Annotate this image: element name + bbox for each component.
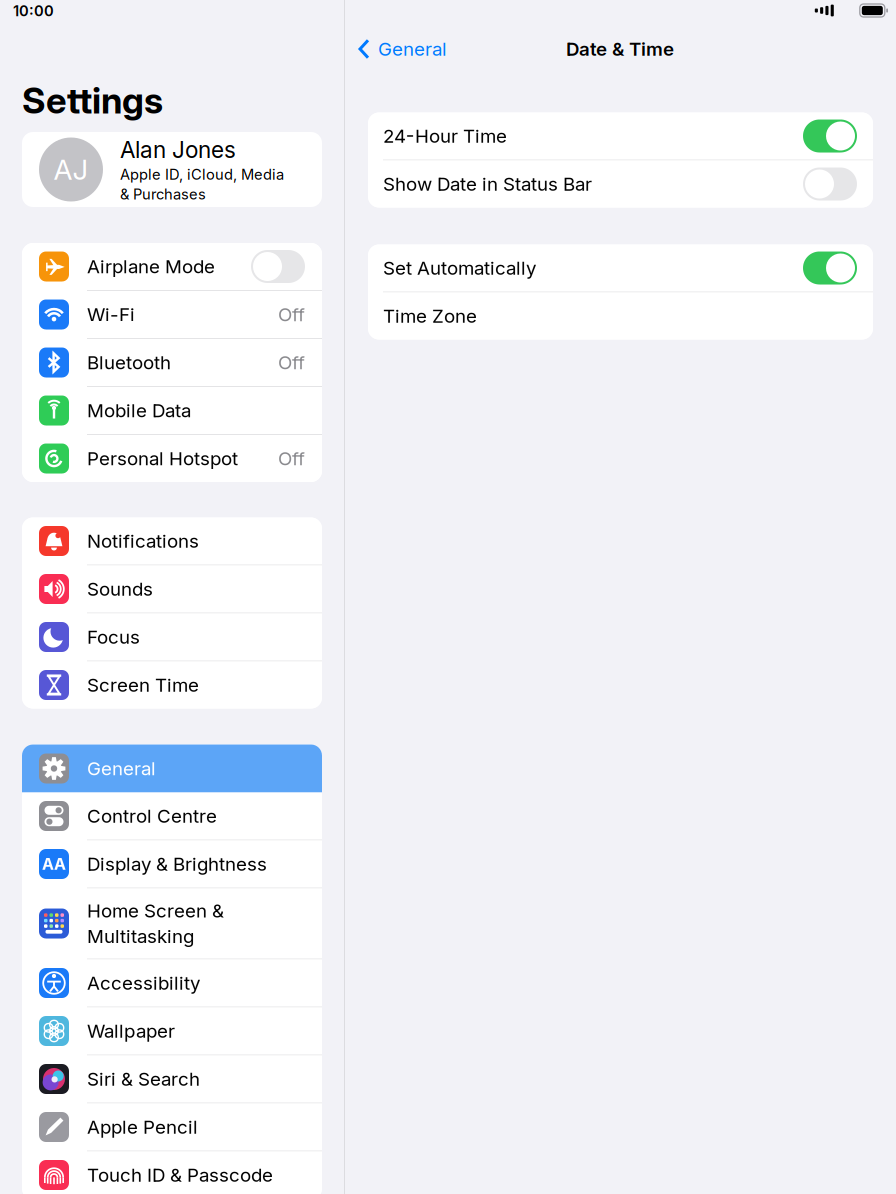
staticText: Alan Jones (120, 136, 236, 163)
button[interactable]: Set Automatically (368, 244, 873, 291)
button[interactable]: Sounds (22, 565, 322, 612)
staticText: Personal Hotspot (87, 447, 238, 470)
button[interactable]: Wallpaper (22, 1007, 322, 1054)
staticText: Wi-Fi (87, 303, 135, 326)
staticText: Wallpaper (87, 1020, 175, 1042)
staticText: Accessibility (87, 972, 200, 994)
button[interactable]: Focus (22, 613, 322, 660)
button[interactable]: General (358, 34, 447, 64)
staticText: 24-Hour Time (383, 125, 507, 147)
staticText: 10:00 (13, 2, 54, 20)
staticText: Apple ID, iCloud, Media (120, 165, 284, 183)
button[interactable]: Home Screen & (22, 888, 322, 958)
staticText: Show Date in Status Bar (383, 173, 592, 195)
staticText: Notifications (87, 530, 199, 552)
staticText: Off (278, 447, 305, 470)
button[interactable]: Touch ID & Passcode (22, 1151, 322, 1194)
button[interactable]: AA (22, 840, 322, 887)
button[interactable]: Personal Hotspot (22, 435, 322, 482)
staticText: Mobile Data (87, 399, 191, 422)
button[interactable]: Bluetooth (22, 339, 322, 386)
button[interactable]: Wi-Fi (22, 291, 322, 338)
staticText: Control Centre (87, 805, 217, 827)
staticText: Multitasking (87, 925, 194, 948)
staticText: Date & Time (566, 38, 674, 60)
button[interactable]: Show Date in Status Bar (368, 160, 873, 207)
button[interactable]: Notifications (22, 517, 322, 564)
staticText: AJ (53, 153, 88, 186)
staticText: Set Automatically (383, 257, 536, 279)
button[interactable]: Mobile Data (22, 387, 322, 434)
button[interactable]: Accessibility (22, 959, 322, 1006)
staticText: Home Screen & (87, 899, 224, 922)
staticText: Screen Time (87, 674, 199, 696)
staticText: Sounds (87, 578, 153, 600)
staticText: General (378, 38, 447, 60)
button[interactable]: Screen Time (22, 661, 322, 708)
button[interactable]: Control Centre (22, 792, 322, 839)
button[interactable]: Siri & Search (22, 1055, 322, 1102)
staticText: Settings (22, 79, 163, 122)
staticText: Off (278, 303, 305, 326)
staticText: AA (42, 854, 66, 874)
staticText: Bluetooth (87, 351, 171, 374)
button[interactable]: AJ (22, 132, 322, 207)
button[interactable]: 24-Hour Time (368, 112, 873, 159)
button[interactable]: Apple Pencil (22, 1103, 322, 1150)
staticText: Time Zone (383, 305, 477, 327)
staticText: Focus (87, 626, 140, 648)
staticText: Siri & Search (87, 1068, 200, 1090)
button[interactable]: Time Zone (368, 292, 873, 339)
staticText: Off (278, 351, 305, 374)
staticText: Display & Brightness (87, 853, 267, 875)
staticText: Apple Pencil (87, 1116, 198, 1138)
staticText: General (87, 757, 156, 780)
button[interactable]: Airplane Mode (22, 243, 322, 290)
staticText: Touch ID & Passcode (87, 1164, 273, 1186)
staticText: & Purchases (120, 185, 206, 203)
staticText: Airplane Mode (87, 255, 215, 278)
button[interactable]: General (22, 744, 322, 792)
